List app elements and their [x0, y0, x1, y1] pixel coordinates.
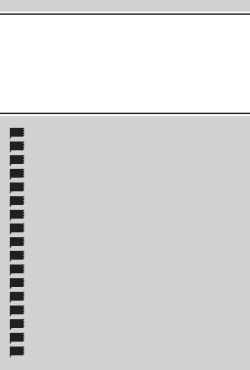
button[interactable]: Message 10: [0, 244, 250, 258]
button[interactable]: Message 8: [0, 217, 250, 230]
button[interactable]: Message 9: [0, 230, 250, 244]
button[interactable]: Message 2: [0, 135, 250, 148]
button[interactable]: Message 16: [0, 326, 250, 340]
button[interactable]: Message 17: [0, 340, 250, 353]
button[interactable]: Message 13: [0, 285, 250, 299]
button[interactable]: Message 5: [0, 176, 250, 189]
button[interactable]: Message 1: [0, 121, 250, 135]
button[interactable]: Message 3: [0, 148, 250, 162]
button[interactable]: Message 6: [0, 189, 250, 203]
button[interactable]: Message 4: [0, 162, 250, 176]
button[interactable]: Message 7: [0, 203, 250, 217]
button[interactable]: Message 12: [0, 271, 250, 285]
button[interactable]: Message 11: [0, 258, 250, 271]
button[interactable]: Message 14: [0, 299, 250, 312]
button[interactable]: Message 15: [0, 312, 250, 326]
